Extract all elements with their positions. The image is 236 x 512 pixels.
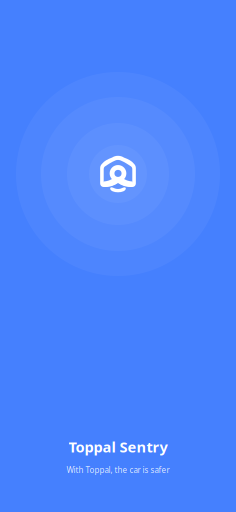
staticText: Toppal Sentry <box>68 437 167 456</box>
staticText: With Toppal, the car is safer <box>66 464 169 475</box>
